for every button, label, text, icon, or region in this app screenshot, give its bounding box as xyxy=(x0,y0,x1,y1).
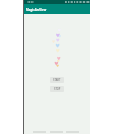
button[interactable]: START xyxy=(50,77,64,83)
staticText: STOP xyxy=(54,87,61,91)
staticText: START xyxy=(53,78,61,82)
button[interactable]: MagicArcView xyxy=(24,4,90,14)
button[interactable]: STOP xyxy=(50,86,64,92)
staticText: MagicArcView xyxy=(26,8,47,12)
